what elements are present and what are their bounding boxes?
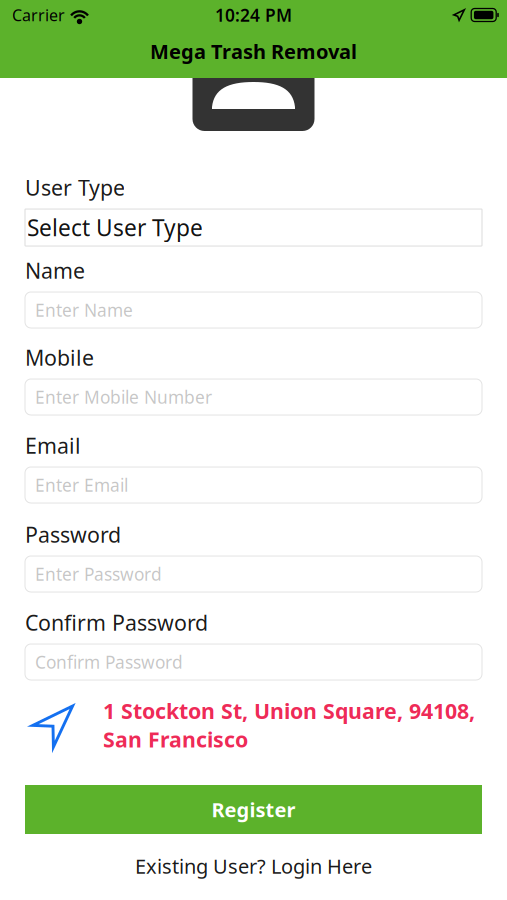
button[interactable]: Enter Email — [25, 467, 482, 503]
staticText: User Type — [25, 173, 125, 202]
button[interactable]: Enter Password — [25, 556, 482, 592]
staticText: Confirm Password — [25, 608, 208, 637]
staticText: Password — [25, 520, 121, 549]
button[interactable]: Confirm Password — [25, 644, 482, 680]
staticText: Enter Name — [35, 298, 133, 321]
button[interactable]: Enter Name — [25, 292, 482, 328]
staticText: 1 Stockton St, Union Square, 94108, San … — [103, 697, 475, 753]
staticText: 10:24 PM — [215, 3, 292, 26]
staticText: Mobile — [25, 343, 94, 372]
button[interactable]: Enter Mobile Number — [25, 379, 482, 415]
staticText: Existing User? Login Here — [135, 853, 372, 879]
button[interactable]: Select User Type — [25, 209, 482, 246]
button[interactable]: Register — [25, 785, 482, 834]
staticText: Enter Email — [35, 473, 128, 496]
button[interactable]: Existing User? Login Here — [25, 850, 482, 882]
staticText: Email — [25, 431, 81, 460]
staticText: Carrier — [12, 4, 65, 26]
staticText: Register — [211, 796, 295, 823]
staticText: Enter Mobile Number — [35, 385, 212, 408]
staticText: Mega Trash Removal — [150, 38, 357, 65]
staticText: Enter Password — [35, 562, 162, 585]
button[interactable]: 1 Stockton St, Union Square, 94108, San … — [25, 700, 482, 750]
staticText: Name — [25, 256, 85, 285]
staticText: Confirm Password — [35, 650, 183, 673]
staticText: Select User Type — [27, 212, 203, 242]
